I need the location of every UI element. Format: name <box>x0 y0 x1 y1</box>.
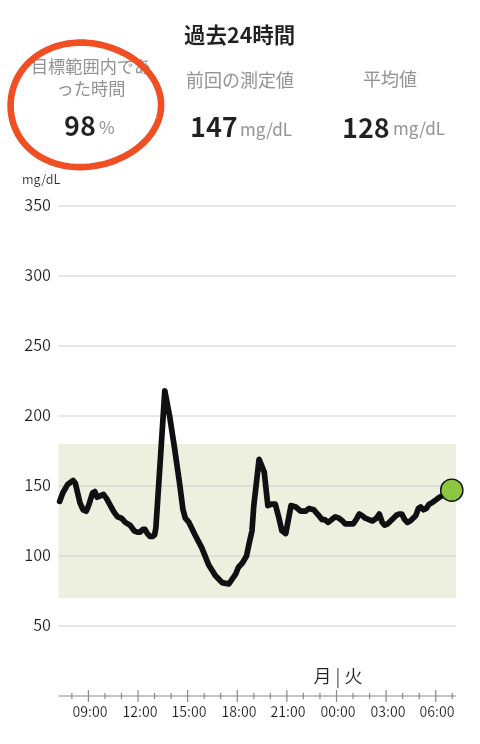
staticText: 平均値 <box>363 65 417 91</box>
staticText: % <box>99 114 115 139</box>
staticText: 目標範囲内であ った時間 <box>21 53 161 100</box>
staticText: mg/dL <box>393 115 446 140</box>
staticText: 09:00 <box>60 701 120 721</box>
staticText: mg/dL <box>240 116 293 141</box>
button[interactable]: 目標範囲内であった時間 98% <box>8 36 168 176</box>
staticText: 150 <box>8 472 51 495</box>
staticText: 月 | 火 <box>293 662 383 688</box>
staticText: 15:00 <box>159 701 219 721</box>
staticText: 00:00 <box>308 701 368 721</box>
staticText: 06:00 <box>407 701 467 721</box>
staticText: 21:00 <box>258 701 318 721</box>
staticText: 50 <box>8 612 51 635</box>
staticText: 03:00 <box>358 701 418 721</box>
button[interactable]: 平均値 128 mg/dL <box>336 56 472 146</box>
staticText: 250 <box>8 332 51 355</box>
staticText: 350 <box>8 192 51 215</box>
staticText: 18:00 <box>209 701 269 721</box>
button[interactable]: 血糖値グラフ 過去24時間 <box>8 190 472 710</box>
staticText: 12:00 <box>110 701 170 721</box>
staticText: 200 <box>8 402 51 425</box>
staticText: 147 <box>190 106 238 145</box>
staticText: 128 <box>342 107 390 146</box>
staticText: 前回の測定値 <box>186 66 294 92</box>
staticText: mg/dL <box>22 169 61 187</box>
staticText: 100 <box>8 542 51 565</box>
staticText: 過去24時間 <box>184 18 296 49</box>
staticText: 300 <box>8 262 51 285</box>
button[interactable]: 前回の測定値 147 mg/dL <box>176 56 328 146</box>
staticText: 98 <box>64 105 96 144</box>
